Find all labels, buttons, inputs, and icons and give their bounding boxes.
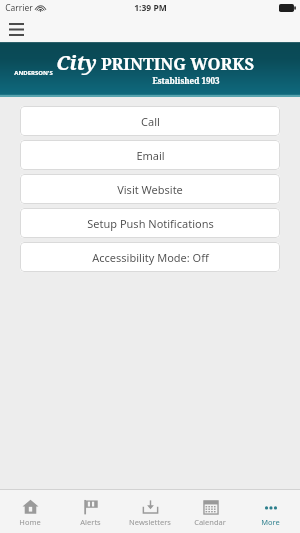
staticText: 1:39 PM [134, 2, 167, 14]
staticText: Call [141, 114, 160, 129]
staticText: Newsletters [129, 517, 171, 527]
button[interactable]: Call [20, 106, 280, 136]
staticText: Carrier [5, 2, 33, 14]
staticText: Setup Push Notifications [87, 216, 214, 231]
button[interactable]: Home [0, 490, 60, 533]
staticText: Email [136, 148, 165, 163]
button[interactable]: Newsletters [120, 490, 180, 533]
staticText: Home [19, 517, 41, 527]
staticText: Accessibility Mode: Off [92, 250, 209, 265]
staticText: Alerts [80, 517, 101, 527]
staticText: Calendar [194, 517, 226, 527]
button[interactable]: More [240, 490, 300, 533]
button[interactable]: Accessibility Mode: Off [20, 242, 280, 272]
button[interactable]: Menu [4, 17, 28, 41]
staticText: ANDERSON'S [14, 69, 53, 77]
button[interactable]: Calendar [180, 490, 240, 533]
staticText: Visit Website [117, 182, 183, 197]
button[interactable]: Visit Website [20, 174, 280, 204]
button[interactable]: Email [20, 140, 280, 170]
staticText: More [261, 517, 280, 527]
button[interactable]: Setup Push Notifications [20, 208, 280, 238]
button[interactable]: Alerts [60, 490, 120, 533]
staticText: PRINTING WORKS [101, 52, 254, 74]
staticText: City [56, 49, 97, 76]
staticText: Established 1903 [152, 75, 220, 86]
